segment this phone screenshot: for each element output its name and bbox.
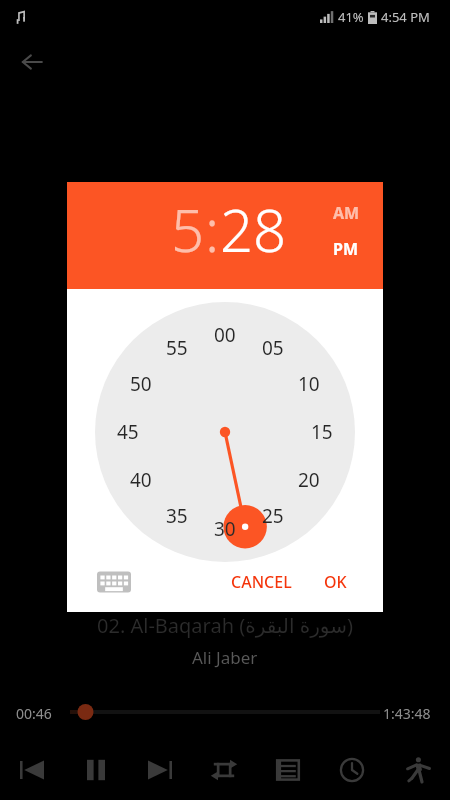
button[interactable]: Playlist: [256, 742, 320, 798]
button[interactable]: 28: [220, 190, 287, 269]
button[interactable]: 00: [95, 302, 355, 562]
button[interactable]: Pause: [64, 742, 128, 798]
staticText: OK: [324, 571, 347, 593]
button[interactable]: AM: [333, 202, 360, 224]
staticText: Ali Jaber: [192, 646, 258, 669]
button[interactable]: PM: [333, 238, 359, 260]
staticText: 55: [166, 335, 188, 361]
staticText: 10: [298, 371, 320, 397]
staticText: CANCEL: [231, 571, 292, 593]
staticText: 15: [311, 419, 333, 445]
button[interactable]: 5: [171, 190, 205, 269]
button[interactable]: Previous: [0, 742, 64, 798]
button[interactable]: OK: [307, 562, 363, 602]
staticText: 25: [262, 503, 284, 529]
staticText: PM: [333, 238, 359, 260]
staticText: 05: [262, 335, 284, 361]
button[interactable]: Walk mode: [384, 742, 448, 798]
staticText: AM: [333, 202, 360, 224]
staticText: 28: [220, 190, 287, 269]
button[interactable]: Sleep timer: [320, 742, 384, 798]
staticText: 4:54 PM: [381, 8, 430, 26]
staticText: 1:43:48: [383, 704, 431, 723]
staticText: 40: [130, 467, 152, 493]
staticText: 30: [214, 516, 236, 542]
staticText: :: [205, 190, 220, 269]
button[interactable]: [70, 700, 380, 724]
staticText: 20: [298, 467, 320, 493]
button[interactable]: Back: [10, 40, 54, 84]
staticText: 50: [130, 371, 152, 397]
staticText: 00: [214, 322, 236, 348]
button[interactable]: Switch to keyboard input: [97, 569, 131, 595]
staticText: 5: [171, 190, 205, 269]
staticText: 35: [166, 503, 188, 529]
staticText: 45: [117, 419, 139, 445]
button[interactable]: Repeat: [192, 742, 256, 798]
staticText: 00:46: [16, 704, 52, 723]
button[interactable]: CANCEL: [219, 562, 303, 602]
button[interactable]: Next: [128, 742, 192, 798]
staticText: 41%: [338, 8, 364, 26]
staticText: 02. Al-Baqarah (سورة البقرة): [97, 612, 353, 639]
